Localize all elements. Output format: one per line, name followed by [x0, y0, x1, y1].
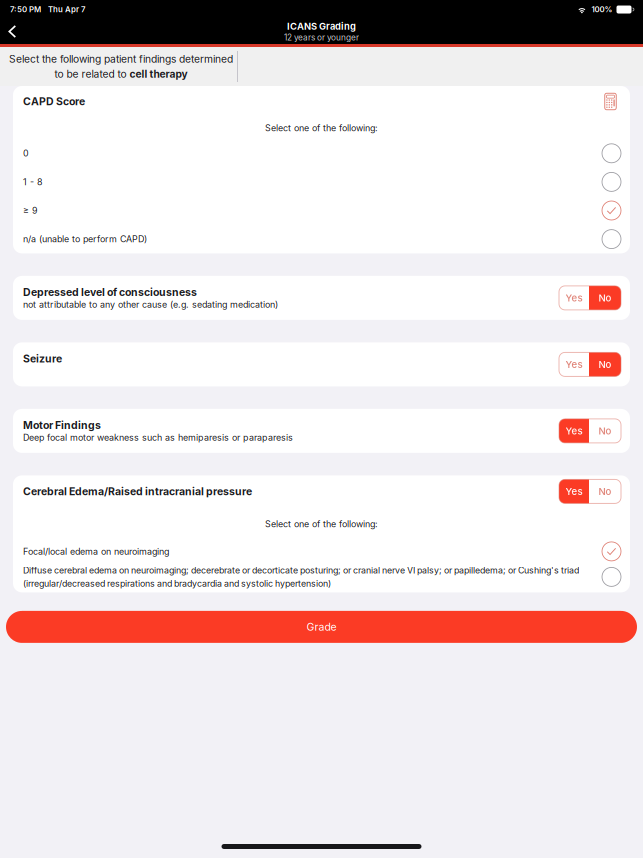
staticText: to be related to — [54, 68, 129, 80]
staticText: (irregular/decreased respirations and br… — [23, 578, 331, 589]
staticText: CAPD Score — [23, 95, 85, 108]
button[interactable]: No — [589, 479, 621, 503]
button[interactable]: Focal/local edema on neuroimaging — [13, 540, 630, 562]
button[interactable]: Yes — [559, 479, 589, 503]
staticText: 7:50 PM — [10, 5, 41, 14]
staticText: No — [598, 486, 611, 497]
staticText: Select one of the following: — [265, 123, 378, 133]
staticText: ICANS Grading — [287, 21, 356, 32]
staticText: not attributable to any other cause (e.g… — [23, 299, 278, 310]
staticText: Thu Apr 7 — [48, 5, 86, 14]
staticText: n/a (unable to perform CAPD) — [23, 234, 147, 244]
staticText: 1 - 8 — [23, 176, 43, 187]
staticText: Focal/local edema on neuroimaging — [23, 546, 169, 557]
button[interactable]: Back — [0, 19, 29, 44]
button[interactable]: No — [589, 286, 621, 310]
button[interactable]: Yes — [559, 352, 589, 376]
button[interactable]: 1 - 8 — [13, 168, 630, 196]
button[interactable]: ≥ 9 — [13, 196, 630, 225]
staticText: No — [598, 425, 611, 437]
button[interactable]: Diffuse cerebral edema on neuroimaging; … — [13, 562, 630, 591]
button[interactable]: No — [589, 419, 621, 443]
staticText: Yes — [565, 486, 582, 497]
staticText: Yes — [565, 292, 582, 304]
button[interactable]: n/a (unable to perform CAPD) — [13, 225, 630, 253]
staticText: No — [598, 292, 611, 304]
staticText: Diffuse cerebral edema on neuroimaging; … — [23, 565, 579, 576]
button[interactable]: No — [589, 352, 621, 376]
button[interactable]: CAPD calculator — [604, 92, 617, 110]
staticText: cell therapy — [129, 68, 187, 80]
staticText: Motor Findings — [23, 419, 101, 432]
staticText: No — [598, 359, 611, 370]
staticText: Yes — [565, 425, 582, 437]
staticText: Seizure — [23, 352, 62, 365]
staticText: 100% — [591, 5, 612, 14]
staticText: Deep focal motor weakness such as hemipa… — [23, 432, 293, 443]
button[interactable]: Yes — [559, 286, 589, 310]
staticText: Select one of the following: — [265, 518, 378, 529]
staticText: 12 years or younger — [284, 32, 359, 42]
button[interactable]: Yes — [559, 419, 589, 443]
button[interactable]: 0 — [13, 139, 630, 168]
staticText: ≥ 9 — [23, 205, 38, 216]
button[interactable]: Grade — [6, 611, 637, 643]
staticText: 0 — [23, 148, 29, 159]
staticText: Yes — [565, 359, 582, 370]
staticText: Grade — [306, 620, 336, 633]
staticText: Cerebral Edema/Raised intracranial press… — [23, 485, 252, 498]
staticText: Depressed level of consciousness — [23, 286, 197, 299]
staticText: Select the following patient findings de… — [9, 53, 233, 65]
